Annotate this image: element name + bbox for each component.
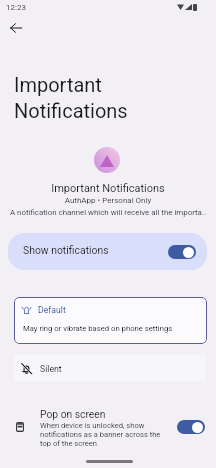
staticText: Silent bbox=[40, 364, 62, 374]
staticText: Show notifications bbox=[23, 244, 109, 256]
button[interactable]: Show notifications bbox=[8, 233, 207, 270]
button[interactable]: Default bbox=[14, 297, 207, 344]
staticText: Default bbox=[38, 305, 66, 315]
staticText: AuthApp • Personal Only bbox=[0, 196, 216, 205]
staticText: When device is unlocked, show notificati… bbox=[40, 421, 161, 448]
button[interactable]: Toggle bbox=[177, 420, 205, 434]
button[interactable]: Pop on screen bbox=[0, 400, 216, 452]
staticText: A notification channel which will receiv… bbox=[0, 208, 216, 217]
button[interactable]: Back bbox=[4, 16, 28, 40]
staticText: Important Notifications bbox=[14, 73, 128, 123]
staticText: 12:23 bbox=[6, 3, 26, 12]
button[interactable]: Silent bbox=[14, 354, 206, 382]
staticText: May ring or vibrate based on phone setti… bbox=[23, 324, 173, 333]
staticText: Pop on screen bbox=[40, 408, 106, 420]
button[interactable]: Toggle bbox=[168, 245, 196, 259]
staticText: Important Notifications bbox=[0, 182, 216, 195]
